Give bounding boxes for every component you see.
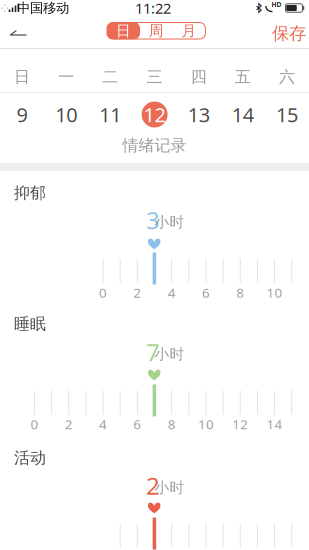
staticText: 小时 <box>154 213 184 231</box>
staticText: 日 <box>14 67 30 87</box>
staticText: 4 <box>99 415 107 433</box>
staticText: 12 <box>143 101 165 128</box>
staticText: 9 <box>17 101 28 128</box>
button[interactable]: Back <box>10 30 26 36</box>
staticText: 2 <box>65 415 73 433</box>
staticText: 抑郁 <box>14 183 46 203</box>
staticText: 10 <box>55 101 77 128</box>
staticText: 活动 <box>14 448 46 468</box>
button[interactable]: 10 <box>46 100 86 128</box>
button[interactable]: 15 <box>267 100 307 128</box>
staticText: 12 <box>232 415 248 433</box>
button[interactable]: 保存 <box>272 23 306 44</box>
staticText: 小时 <box>154 345 184 363</box>
staticText: 睡眠 <box>14 314 46 334</box>
staticText: 保存 <box>272 23 306 44</box>
staticText: 三 <box>146 67 162 87</box>
staticText: 8 <box>168 415 176 433</box>
staticText: 2 <box>150 549 158 550</box>
staticText: HD <box>271 0 281 9</box>
staticText: ⁘ <box>1 2 9 14</box>
staticText: 14 <box>266 415 282 433</box>
staticText: 8 <box>236 284 244 301</box>
staticText: 7 <box>146 336 160 368</box>
staticText: 2 <box>133 284 141 301</box>
staticText: 3 <box>146 204 160 236</box>
staticText: 日 <box>116 22 131 40</box>
staticText: 6 <box>202 284 210 301</box>
staticText: 14 <box>232 101 254 128</box>
staticText: 小时 <box>154 478 184 496</box>
button[interactable]: 月 <box>172 22 205 39</box>
staticText: 周 <box>149 22 164 40</box>
button[interactable]: 9 <box>2 100 42 128</box>
staticText: 10 <box>267 284 283 301</box>
staticText: 2 <box>146 470 160 501</box>
button[interactable]: 12 <box>134 100 174 128</box>
staticText: 月 <box>181 22 196 40</box>
button[interactable]: 13 <box>179 100 219 128</box>
staticText: 六 <box>279 67 295 87</box>
staticText: 情绪记录 <box>122 136 186 155</box>
staticText: 13 <box>188 101 210 128</box>
staticText: 中国移动 <box>17 0 69 16</box>
button[interactable]: 14 <box>223 100 263 128</box>
staticText: 10 <box>198 415 214 433</box>
staticText: 一 <box>58 67 74 87</box>
button[interactable]: 11 <box>90 100 130 128</box>
staticText: 0 <box>99 284 107 301</box>
staticText: 4 <box>168 284 176 301</box>
staticText: 15 <box>276 101 298 128</box>
staticText: 11:22 <box>135 0 171 18</box>
staticText: 二 <box>102 67 118 87</box>
staticText: 0 <box>30 415 38 433</box>
button[interactable]: 周 <box>140 22 173 39</box>
staticText: 6 <box>133 415 141 433</box>
staticText: 11 <box>99 101 121 128</box>
button[interactable]: 日 <box>107 22 140 40</box>
staticText: 四 <box>191 67 207 87</box>
staticText: 五 <box>235 67 251 87</box>
